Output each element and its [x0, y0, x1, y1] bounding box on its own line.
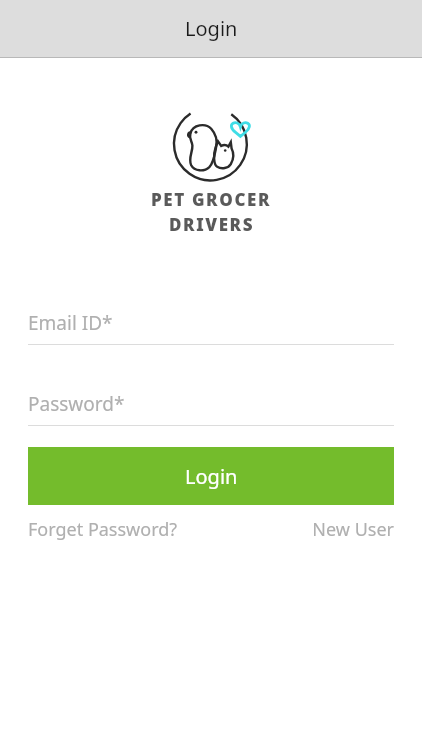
button[interactable]: Email ID* — [28, 302, 394, 344]
staticText: PET GROCER — [151, 188, 272, 211]
staticText: DRIVERS — [169, 213, 255, 236]
button[interactable]: Login — [28, 447, 394, 505]
staticText: Password* — [28, 391, 125, 417]
staticText: Login — [185, 15, 238, 42]
staticText: Forget Password? — [28, 517, 178, 542]
other: Pet Grocer Drivers logo — [172, 106, 252, 182]
button[interactable]: Forget Password? — [28, 517, 178, 542]
button[interactable]: Password* — [28, 383, 394, 425]
staticText: Login — [185, 463, 238, 490]
staticText: Email ID* — [28, 310, 113, 336]
button[interactable]: New User — [312, 517, 394, 542]
staticText: New User — [312, 517, 394, 542]
